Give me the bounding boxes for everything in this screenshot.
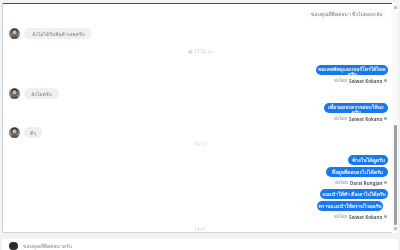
- staticText: ยังไม่ได้รับสินค้าเลยครับ: [32, 30, 85, 38]
- button[interactable]: ทราบแนะนำให้ทราบไวมครับ: [317, 201, 383, 211]
- staticText: 14:11: [194, 141, 207, 148]
- staticText: 14:41: [194, 226, 207, 233]
- staticText: ส่งโดย: [334, 115, 349, 122]
- button[interactable]: ยังไม่ครับ: [9, 88, 59, 99]
- staticText: ขอเลขพัสดุและเบอร์โทรได้ไหมครับ: [316, 65, 388, 75]
- button[interactable]: ขอบคุณที่ติดต่อมาครับ: [2, 239, 398, 250]
- staticText: Saiwat Kokano: [349, 116, 383, 122]
- staticText: ดีๆ: [30, 129, 36, 137]
- staticText: ขอบคุณที่ติดต่อมาครับ: [23, 242, 72, 250]
- button[interactable]: ถึงสุดที่ตอบจะไปได้ครับ: [326, 167, 388, 177]
- staticText: ดๆ: [393, 205, 398, 211]
- staticText: ทราบแนะนำให้ทราบไวมครับ: [318, 202, 382, 210]
- staticText: ขอบคุณที่ติดต่อมา ขึงไม่ตอบกลับ: [311, 10, 383, 18]
- staticText: ส่งโดย: [334, 77, 349, 84]
- staticText: แนะนำให้ทำ คือเอาไปได้ครับ: [322, 190, 386, 198]
- button[interactable]: ขอบคุณที่ติดต่อมา ขึงไม่ตอบกลับ: [308, 9, 386, 19]
- button[interactable]: ข้างในได้ดูครับ: [348, 155, 388, 165]
- staticText: เดี๋ยวผมจะตรวจสอบให้นะครับ: [324, 103, 388, 113]
- button[interactable]: ดีๆ: [9, 127, 42, 138]
- staticText: ข้างในได้ดูครับ: [352, 156, 385, 164]
- staticText: ● 13:52 น.: [188, 47, 213, 55]
- button[interactable]: แนะนำให้ทำ คือเอาไปได้ครับ: [320, 189, 388, 199]
- staticText: Saiwat Kokano: [349, 214, 383, 220]
- staticText: Darat Rungjan: [350, 180, 383, 186]
- button[interactable]: ยังไม่ได้รับสินค้าเลยครับ: [9, 28, 92, 39]
- staticText: Saiwat Kokano: [349, 78, 383, 84]
- staticText: ส่งโดย: [335, 179, 350, 186]
- staticText: ถึงสุดที่ตอบจะไปได้ครับ: [332, 168, 383, 176]
- button[interactable]: ขอเลขพัสดุและเบอร์โทรได้ไหมครับ: [316, 65, 388, 75]
- staticText: ส่งโดย: [334, 213, 349, 220]
- button[interactable]: เดี๋ยวผมจะตรวจสอบให้นะครับ: [324, 103, 388, 113]
- staticText: ยังไม่ครับ: [31, 90, 52, 98]
